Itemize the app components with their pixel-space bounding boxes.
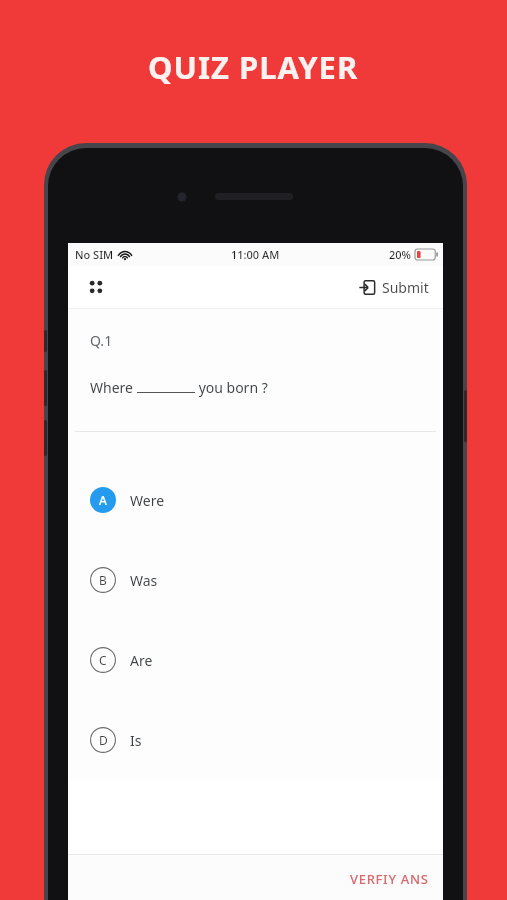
staticText: Q.1 bbox=[90, 331, 113, 350]
staticText: VERFIY ANS bbox=[350, 870, 429, 888]
button[interactable]: Submit bbox=[355, 272, 433, 303]
button[interactable]: B bbox=[68, 540, 443, 620]
staticText: Are bbox=[130, 651, 153, 670]
staticText: Were bbox=[130, 491, 165, 510]
staticText: D bbox=[99, 732, 108, 748]
button[interactable]: D bbox=[68, 700, 443, 780]
staticText: Where bbox=[90, 378, 137, 397]
staticText: Was bbox=[130, 571, 158, 590]
staticText: A bbox=[99, 492, 107, 508]
button[interactable]: A bbox=[68, 460, 443, 540]
staticText: 20% bbox=[389, 247, 411, 262]
staticText: Is bbox=[130, 731, 142, 750]
staticText: you born ? bbox=[195, 378, 268, 397]
staticText: QUIZ PLAYER bbox=[148, 46, 359, 88]
staticText: 11:00 AM bbox=[231, 247, 280, 262]
button[interactable]: C bbox=[68, 620, 443, 700]
staticText: B bbox=[99, 572, 107, 588]
staticText: No SIM bbox=[75, 247, 114, 262]
staticText: Submit bbox=[382, 278, 429, 297]
button[interactable]: Menu bbox=[80, 271, 112, 303]
staticText: C bbox=[99, 652, 107, 668]
button[interactable]: VERFIY ANS bbox=[68, 855, 443, 900]
